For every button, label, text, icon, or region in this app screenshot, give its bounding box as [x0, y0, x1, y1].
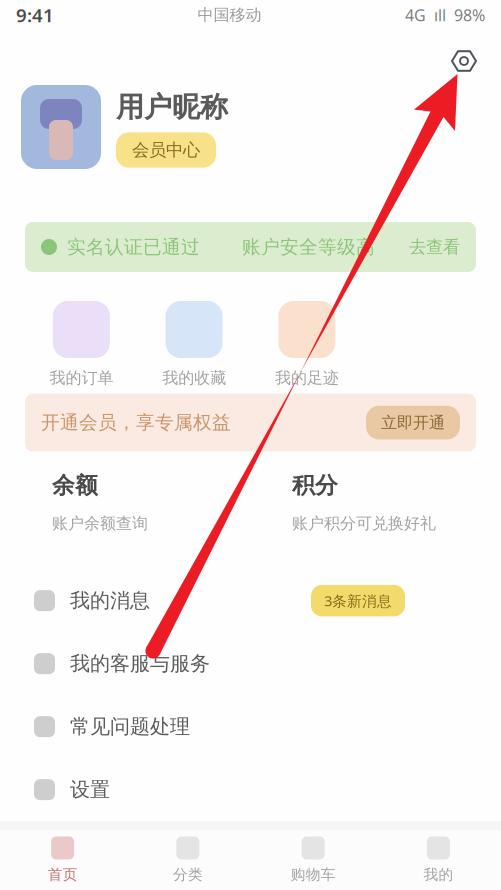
staticText: 实名认证已通过 — [67, 235, 200, 258]
staticText: 我的收藏 — [162, 368, 226, 388]
staticText: 购物车 — [291, 865, 336, 883]
button[interactable]: 我的收藏 — [138, 301, 251, 388]
staticText: 积分 — [292, 472, 338, 499]
staticText: 用户昵称 — [116, 90, 228, 124]
staticText: 4G ıll 98% — [405, 4, 485, 26]
button[interactable]: 积分 — [292, 472, 476, 533]
staticText: 立即开通 — [381, 413, 445, 432]
button[interactable]: 开通会员，享专属权益 — [0, 394, 501, 452]
button[interactable]: 我的消息 — [34, 569, 467, 632]
staticText: 我的足迹 — [275, 368, 339, 388]
button[interactable]: 余额 — [52, 472, 292, 533]
button[interactable]: 设置 — [452, 49, 476, 73]
staticText: 会员中心 — [132, 139, 200, 161]
staticText: 我的消息 — [70, 588, 150, 613]
button[interactable]: 分类 — [125, 836, 250, 883]
button[interactable]: 我的客服与服务 — [34, 632, 467, 695]
staticText: 我的订单 — [49, 368, 113, 388]
button[interactable]: 我的足迹 — [250, 301, 363, 388]
staticText: 首页 — [48, 865, 78, 883]
staticText: 常见问题处理 — [70, 714, 190, 739]
button[interactable]: 设置 — [34, 758, 467, 821]
button[interactable]: 购物车 — [250, 836, 376, 883]
button[interactable]: 我的订单 — [25, 301, 138, 388]
staticText: 9:41 — [16, 3, 54, 27]
button[interactable]: 常见问题处理 — [34, 695, 467, 758]
staticText: 账户积分可兑换好礼 — [292, 513, 436, 533]
staticText: 设置 — [70, 777, 110, 802]
staticText: 账户余额查询 — [52, 513, 148, 533]
staticText: 余额 — [52, 472, 98, 499]
staticText: 分类 — [173, 865, 203, 883]
staticText: 去查看 — [409, 236, 460, 258]
button[interactable]: 我的 — [376, 836, 501, 883]
staticText: 开通会员，享专属权益 — [41, 411, 231, 434]
staticText: 账户安全等级高 — [242, 235, 375, 258]
staticText: 我的 — [423, 865, 453, 883]
button[interactable]: 首页 — [0, 836, 125, 883]
button[interactable]: 实名认证已通过 — [0, 222, 501, 272]
staticText: 中国移动 — [197, 5, 261, 25]
staticText: 3条新消息 — [324, 591, 392, 610]
staticText: 我的客服与服务 — [70, 651, 210, 676]
